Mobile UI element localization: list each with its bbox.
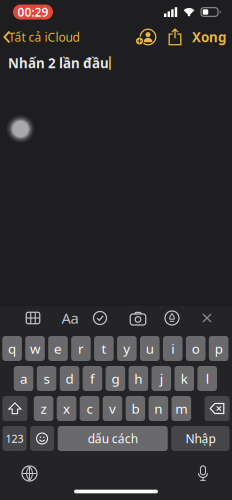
staticText: dấu cách bbox=[88, 430, 138, 446]
staticText: j bbox=[160, 370, 163, 387]
button[interactable]: Dismiss toolbar bbox=[195, 307, 219, 329]
button[interactable]: v bbox=[103, 396, 122, 421]
button[interactable]: dấu cách bbox=[58, 426, 168, 451]
button[interactable]: Xong bbox=[187, 24, 231, 50]
button[interactable]: w bbox=[25, 336, 45, 361]
button[interactable]: s bbox=[37, 366, 56, 391]
staticText: Xong bbox=[192, 28, 226, 46]
button[interactable]: h bbox=[128, 366, 148, 391]
button[interactable]: Text formatting bbox=[58, 307, 82, 329]
staticText: z bbox=[41, 400, 47, 417]
button[interactable]: m bbox=[171, 396, 191, 421]
staticText: d bbox=[65, 370, 73, 387]
button[interactable]: b bbox=[126, 396, 145, 421]
button[interactable]: Insert photo bbox=[126, 307, 150, 329]
staticText: g bbox=[111, 370, 119, 387]
staticText: x bbox=[63, 400, 70, 417]
button[interactable]: o bbox=[186, 336, 205, 361]
staticText: q bbox=[8, 340, 16, 357]
staticText: Nhấn 2 lần đầu bbox=[8, 54, 109, 72]
staticText: t bbox=[101, 340, 106, 357]
button[interactable]: Markup bbox=[160, 307, 184, 329]
staticText: i bbox=[171, 340, 174, 357]
button[interactable]: f bbox=[83, 366, 102, 391]
button[interactable]: k bbox=[174, 366, 194, 391]
button[interactable]: e bbox=[48, 336, 68, 361]
staticText: k bbox=[181, 370, 188, 387]
button[interactable]: t bbox=[94, 336, 114, 361]
button[interactable]: c bbox=[80, 396, 99, 421]
staticText: w bbox=[30, 340, 40, 357]
button[interactable]: x bbox=[57, 396, 76, 421]
button[interactable]: l bbox=[197, 366, 217, 391]
button[interactable]: q bbox=[2, 336, 22, 361]
staticText: 00:29 bbox=[17, 4, 48, 20]
staticText: f bbox=[90, 370, 95, 387]
button[interactable]: p bbox=[209, 336, 228, 361]
button[interactable]: Shift bbox=[2, 396, 27, 421]
button[interactable]: y bbox=[117, 336, 137, 361]
button[interactable]: g bbox=[106, 366, 125, 391]
staticText: u bbox=[146, 340, 154, 357]
button[interactable]: Share bbox=[168, 28, 182, 45]
button[interactable]: i bbox=[163, 336, 182, 361]
staticText: 123 bbox=[5, 431, 23, 446]
staticText: e bbox=[54, 340, 62, 357]
staticText: s bbox=[43, 370, 49, 387]
button[interactable]: n bbox=[148, 396, 168, 421]
staticText: b bbox=[131, 400, 139, 417]
staticText: o bbox=[192, 340, 200, 357]
button[interactable]: Nhập bbox=[171, 426, 229, 451]
staticText: Nhập bbox=[185, 430, 215, 446]
button[interactable]: u bbox=[140, 336, 160, 361]
staticText: v bbox=[109, 400, 116, 417]
staticText: Tất cả iCloud bbox=[8, 29, 79, 45]
button[interactable]: Insert table bbox=[21, 307, 45, 329]
button[interactable]: d bbox=[60, 366, 79, 391]
staticText: c bbox=[86, 400, 92, 417]
staticText: n bbox=[154, 400, 162, 417]
button[interactable]: Checklist bbox=[88, 307, 112, 329]
staticText: Aa bbox=[61, 308, 78, 328]
button[interactable]: Recording in progress, 00:29 bbox=[13, 4, 53, 19]
button[interactable]: Back, Tất cả iCloud bbox=[0, 24, 80, 50]
staticText: y bbox=[123, 340, 130, 357]
button[interactable]: z bbox=[34, 396, 53, 421]
staticText: p bbox=[215, 340, 223, 357]
button[interactable]: r bbox=[71, 336, 91, 361]
button[interactable]: Dictation bbox=[197, 465, 208, 481]
button[interactable]: Delete bbox=[205, 396, 230, 421]
button[interactable]: j bbox=[151, 366, 171, 391]
staticText: m bbox=[175, 400, 187, 417]
button[interactable]: Emoji bbox=[30, 426, 54, 451]
button[interactable]: Share note with people bbox=[135, 28, 157, 46]
button[interactable]: Next keyboard bbox=[21, 465, 38, 482]
staticText: l bbox=[206, 370, 209, 387]
staticText: h bbox=[134, 370, 142, 387]
staticText: a bbox=[20, 370, 27, 387]
button[interactable]: a bbox=[14, 366, 33, 391]
button[interactable]: 123 bbox=[2, 426, 26, 451]
staticText: r bbox=[78, 340, 84, 357]
